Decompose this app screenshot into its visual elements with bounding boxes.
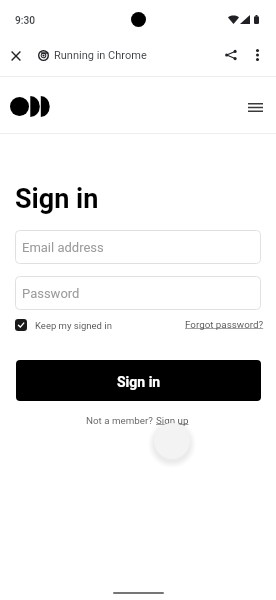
staticText: Not a member?	[86, 415, 156, 426]
button[interactable]: Sign up	[156, 415, 189, 426]
button[interactable]: Keep my signed in	[15, 319, 112, 331]
button[interactable]: Close	[2, 42, 28, 68]
button[interactable]: Sign in	[16, 360, 261, 401]
staticText: Sign up	[156, 415, 189, 426]
button[interactable]: Forgot password?	[185, 319, 264, 330]
staticText: Sign in	[15, 183, 99, 215]
staticText: Sign in	[117, 374, 161, 390]
staticText: 9:30	[15, 15, 36, 27]
button[interactable]: Password	[15, 276, 261, 310]
staticText: Email address	[22, 240, 104, 255]
staticText: Keep my signed in	[35, 320, 112, 331]
button[interactable]: Menu	[241, 93, 269, 121]
button[interactable]: More options	[244, 42, 270, 68]
button[interactable]: Share	[218, 42, 244, 68]
staticText: Password	[22, 286, 80, 301]
staticText: Forgot password?	[185, 319, 264, 330]
staticText: Running in Chrome	[54, 49, 147, 62]
button[interactable]: Email address	[15, 230, 261, 264]
